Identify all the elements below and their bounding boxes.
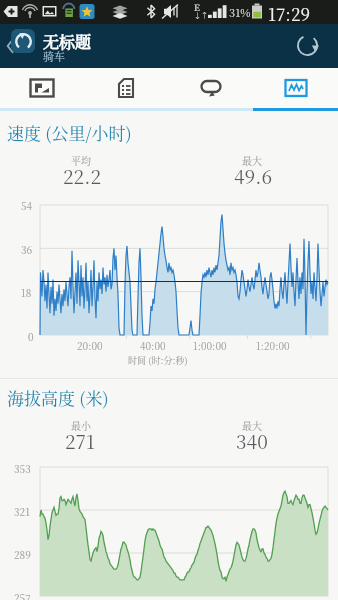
staticText: 257 <box>14 590 31 600</box>
staticText: 18 <box>21 285 32 299</box>
staticText: 36 <box>21 242 33 256</box>
staticText: 最大 <box>242 153 262 167</box>
button[interactable]: Summary <box>84 68 168 108</box>
staticText: 40:00 <box>140 338 166 352</box>
staticText: 340 <box>236 427 268 454</box>
button[interactable]: Activity type <box>11 29 35 53</box>
button[interactable]: Refresh <box>293 31 321 59</box>
staticText: 骑车 <box>43 48 65 64</box>
staticText: 海拔高度 (米) <box>7 385 109 409</box>
staticText: 最小 <box>71 418 91 432</box>
button[interactable]: Charts <box>253 68 338 108</box>
staticText: ↓↑ <box>194 10 208 20</box>
staticText: 31% <box>229 4 251 20</box>
staticText: 最大 <box>242 418 262 432</box>
staticText: 49.6 <box>234 162 273 189</box>
staticText: 时间 (时:分:秒) <box>128 354 188 367</box>
staticText: 速度 (公里/小时) <box>7 120 132 144</box>
staticText: 平均 <box>71 153 91 167</box>
staticText: 22.2 <box>63 162 102 189</box>
staticText: 54 <box>21 198 33 212</box>
button[interactable]: Laps <box>168 68 253 108</box>
staticText: 无标题 <box>43 30 92 53</box>
staticText: 321 <box>14 504 30 518</box>
button[interactable]: Map <box>0 68 84 108</box>
staticText: 0 <box>28 329 34 343</box>
staticText: 1:00:00 <box>193 338 227 352</box>
staticText: 20:00 <box>77 338 103 352</box>
staticText: 289 <box>14 547 31 561</box>
staticText: 271 <box>65 427 95 454</box>
staticText: 353 <box>14 461 31 475</box>
button[interactable]: Back <box>2 34 18 58</box>
staticText: 1:20:00 <box>256 338 290 352</box>
staticText: 17:29 <box>268 1 310 25</box>
staticText: E <box>194 1 200 14</box>
